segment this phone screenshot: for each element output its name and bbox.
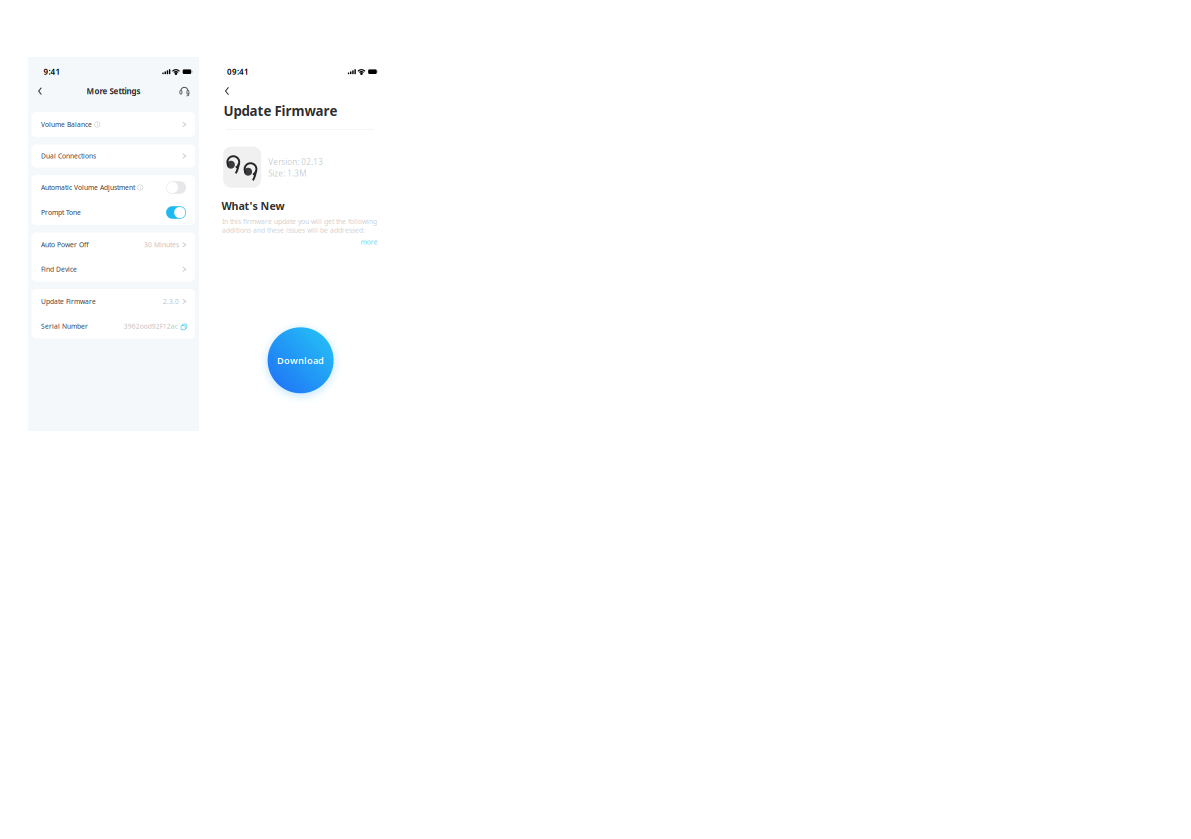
staticText: 2.3.0: [163, 297, 179, 306]
staticText: What's New: [221, 199, 284, 213]
button[interactable]: Back: [34, 85, 45, 98]
staticText: More Settings: [86, 86, 140, 96]
staticText: Size: 1.3M: [268, 168, 306, 179]
staticText: Prompt Tone: [41, 208, 81, 217]
button[interactable]: Update Firmware: [32, 289, 195, 314]
staticText: Automatic Volume Adjustment: [41, 183, 135, 192]
button[interactable]: more: [358, 238, 378, 245]
staticText: Auto Power Off: [41, 240, 89, 249]
button[interactable]: Download: [268, 327, 334, 393]
button[interactable]: Auto Power Off: [32, 232, 195, 257]
staticText: Find Device: [41, 265, 77, 274]
staticText: In this firmware update you will get the…: [222, 217, 377, 235]
staticText: Update Firmware: [41, 297, 96, 306]
staticText: Dual Connections: [41, 152, 96, 160]
button[interactable]: Prompt Tone: [32, 200, 195, 225]
button[interactable]: Dual Connections: [32, 144, 195, 167]
staticText: Serial Number: [41, 322, 88, 331]
button[interactable]: Customer support: [178, 84, 191, 97]
staticText: 9:41: [43, 66, 60, 77]
staticText: 09:41: [227, 66, 249, 77]
button[interactable]: Volume Balance: [32, 112, 195, 137]
button[interactable]: Serial Number: [32, 314, 195, 339]
staticText: Update Firmware: [223, 102, 337, 120]
staticText: Volume Balance: [41, 120, 92, 129]
button[interactable]: Back: [221, 85, 232, 97]
staticText: 30 Minutes: [144, 240, 179, 249]
button[interactable]: Find Device: [32, 257, 195, 281]
staticText: 3962ood92F12ac: [124, 322, 178, 331]
staticText: more: [361, 237, 378, 246]
staticText: Download: [277, 354, 324, 366]
staticText: Version: 02.13: [268, 157, 323, 167]
button[interactable]: Automatic Volume Adjustment: [32, 175, 195, 200]
